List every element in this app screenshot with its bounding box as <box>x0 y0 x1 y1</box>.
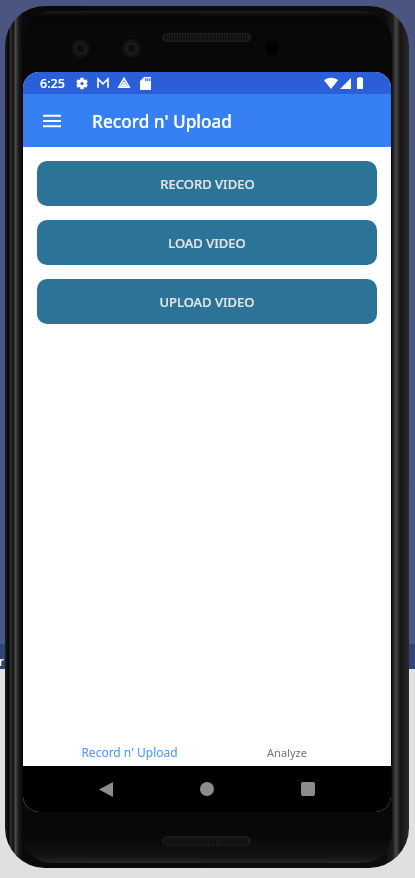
staticText: RECORD VIDEO <box>160 175 255 193</box>
button[interactable]: RECORD VIDEO <box>37 161 377 206</box>
button[interactable]: Analyze <box>239 735 335 769</box>
button[interactable]: Recent apps <box>285 766 331 812</box>
button[interactable]: Record n' Upload <box>57 735 201 769</box>
staticText: Analyze <box>267 745 307 760</box>
button[interactable]: LOAD VIDEO <box>37 220 377 265</box>
staticText: r <box>0 653 4 669</box>
staticText: LOAD VIDEO <box>168 234 246 252</box>
button[interactable]: Back <box>83 766 129 812</box>
button[interactable]: Home <box>184 766 230 812</box>
staticText: Record n' Upload <box>81 744 178 760</box>
staticText: 6:25 <box>40 75 65 92</box>
staticText: Record n' Upload <box>92 110 232 133</box>
button[interactable]: UPLOAD VIDEO <box>37 279 377 324</box>
staticText: UPLOAD VIDEO <box>159 293 255 311</box>
button[interactable]: Open navigation menu <box>28 97 76 145</box>
